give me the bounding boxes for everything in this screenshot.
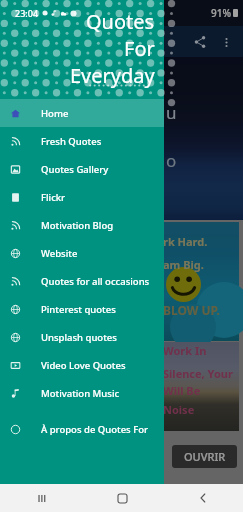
button[interactable]: Quotes for all occasions — [0, 267, 164, 295]
staticText: o — [166, 149, 177, 172]
staticText: Everyday — [70, 62, 155, 89]
staticText: am Big. — [163, 257, 204, 272]
button[interactable]: Website — [0, 239, 164, 267]
button[interactable]: Quotes Gallery — [0, 155, 164, 183]
button[interactable]: Motivation Blog — [0, 211, 164, 239]
button[interactable]: Pinterest quotes — [0, 295, 164, 323]
button[interactable]: Home — [0, 99, 164, 127]
button[interactable]: Motivation Music — [0, 379, 164, 407]
staticText: Website — [41, 247, 78, 260]
staticText: À propos de Quotes For — [41, 423, 149, 436]
staticText: Motivation Music — [41, 387, 120, 400]
staticText: Pinterest quotes — [41, 303, 116, 316]
button[interactable]: More options — [213, 29, 239, 55]
staticText: BLOW UP. — [163, 302, 220, 318]
button[interactable]: OUVRIR — [172, 445, 237, 468]
staticText: Quotes for all occasions — [41, 275, 150, 288]
button[interactable]: Fresh Quotes — [0, 127, 164, 155]
button[interactable]: Back — [189, 484, 217, 512]
staticText: Video Love Quotes — [41, 359, 126, 372]
staticText: u — [166, 101, 177, 124]
button[interactable]: Unsplash quotes — [0, 323, 164, 351]
staticText: Noise — [163, 402, 195, 417]
staticText: Motivation Blog — [41, 219, 114, 232]
staticText: Will Be — [163, 383, 201, 398]
staticText: Quotes — [86, 8, 155, 35]
button[interactable]: Video Love Quotes — [0, 351, 164, 379]
staticText: OUVRIR — [184, 449, 226, 464]
button[interactable]: Home — [108, 484, 136, 512]
button[interactable]: À propos de Quotes For — [0, 415, 164, 443]
staticText: Silence, Your — [163, 366, 233, 381]
button[interactable]: Recent apps — [27, 484, 55, 512]
staticText: Unsplash quotes — [41, 331, 117, 344]
button[interactable]: Share — [187, 29, 213, 55]
staticText: For — [124, 35, 155, 62]
staticText: Quotes Gallery — [41, 163, 109, 176]
staticText: rk Hard. — [163, 234, 208, 249]
staticText: Fresh Quotes — [41, 135, 102, 148]
staticText: Home — [41, 107, 69, 120]
staticText: 23:04 — [15, 7, 39, 19]
staticText: Work In — [163, 343, 207, 358]
staticText: 91% — [211, 6, 231, 20]
button[interactable]: Flickr — [0, 183, 164, 211]
staticText: Flickr — [41, 191, 66, 204]
